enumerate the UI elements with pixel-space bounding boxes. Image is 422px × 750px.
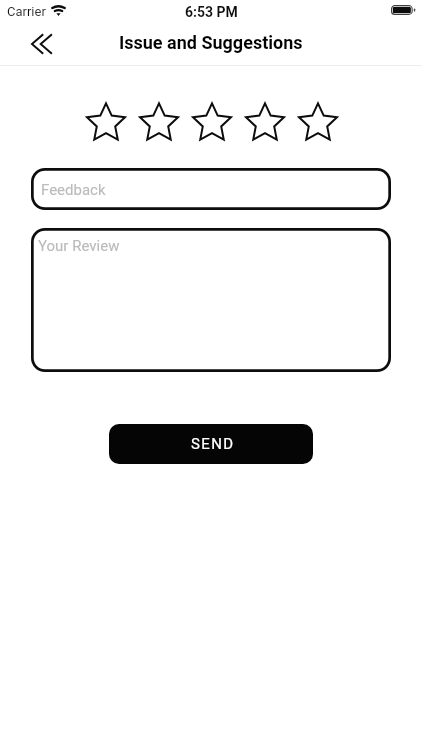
staticText: Issue and Suggestions: [119, 32, 303, 53]
button[interactable]: Back: [22, 25, 60, 63]
button[interactable]: Rate 3 stars: [185, 101, 238, 141]
button[interactable]: SEND: [109, 424, 313, 464]
staticText: Your Review: [38, 237, 120, 255]
staticText: SEND: [191, 435, 235, 453]
staticText: Feedback: [41, 181, 106, 199]
button[interactable]: Rate 2 stars: [132, 101, 185, 141]
staticText: Carrier: [7, 4, 46, 19]
button[interactable]: Rate 1 stars: [79, 101, 132, 141]
button[interactable]: Rate 5 stars: [291, 101, 344, 141]
button[interactable]: Rate 4 stars: [238, 101, 291, 141]
button[interactable]: Your Review: [31, 228, 391, 372]
staticText: 6:53 PM: [185, 4, 238, 20]
button[interactable]: Feedback: [31, 168, 391, 210]
